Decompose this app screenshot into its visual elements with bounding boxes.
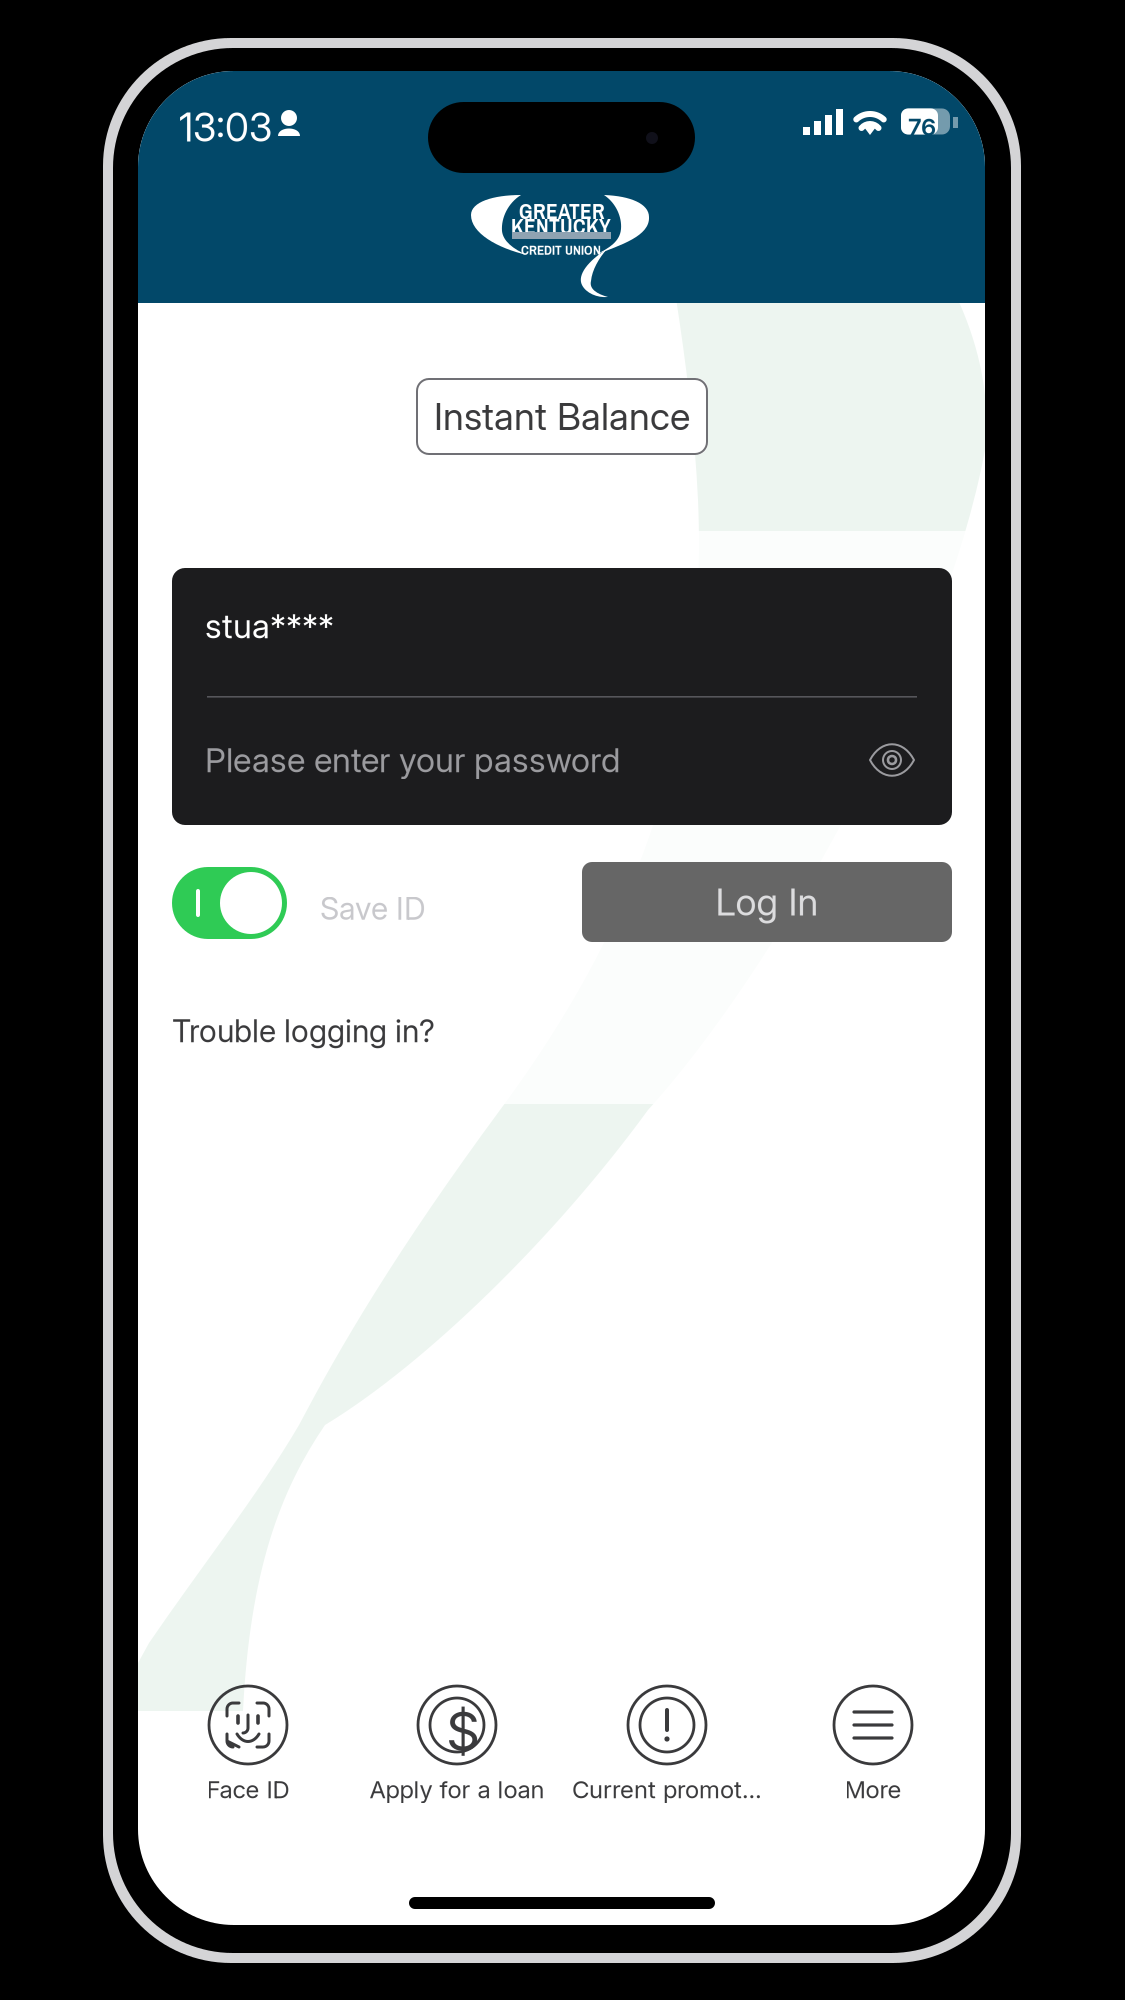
staticText: Current promot… xyxy=(572,1775,762,1804)
button[interactable]: Save ID xyxy=(172,867,287,939)
button[interactable]: Log In xyxy=(582,862,952,942)
staticText: More xyxy=(844,1775,901,1804)
staticText: Log In xyxy=(715,879,818,925)
button[interactable]: More xyxy=(778,1684,968,1810)
staticText: CREDIT UNION xyxy=(521,241,601,259)
staticText: stua**** xyxy=(205,606,334,646)
staticText: Trouble logging in? xyxy=(172,1012,435,1049)
button[interactable]: Instant Balance xyxy=(416,378,708,455)
staticText: Save ID xyxy=(320,890,426,927)
staticText: Apply for a loan xyxy=(369,1775,544,1804)
button[interactable]: Show password xyxy=(868,742,916,778)
button[interactable]: Face ID xyxy=(138,1684,358,1810)
staticText: Please enter your password xyxy=(205,740,620,780)
staticText: 76 xyxy=(908,112,936,141)
staticText: $ xyxy=(446,1699,480,1763)
button[interactable]: Trouble logging in? xyxy=(172,1007,472,1055)
button[interactable]: Current promot… xyxy=(556,1684,778,1810)
staticText: Face ID xyxy=(206,1775,289,1804)
staticText: GREATER xyxy=(519,197,605,226)
staticText: 13:03 xyxy=(179,104,272,151)
staticText: Instant Balance xyxy=(434,394,690,439)
staticText: KENTUCKY xyxy=(511,212,611,241)
button[interactable]: $ xyxy=(358,1684,556,1810)
